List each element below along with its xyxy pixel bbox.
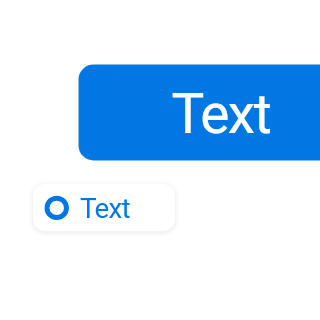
button[interactable]: Text bbox=[78, 64, 320, 160]
staticText: Text bbox=[172, 82, 271, 146]
staticText: Text bbox=[80, 192, 130, 225]
button[interactable]: Circle bbox=[33, 184, 175, 231]
other: Circle bbox=[44, 195, 69, 220]
